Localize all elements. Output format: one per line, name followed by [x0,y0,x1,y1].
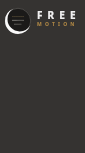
staticText: MOTION [37,21,78,28]
button[interactable]: Free Motion logo [5,8,31,34]
staticText: FREE [37,8,81,22]
